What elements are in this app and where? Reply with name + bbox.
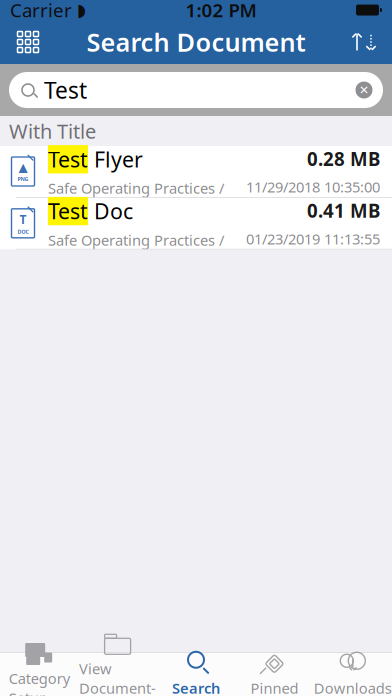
button[interactable]: Sort [342,20,386,64]
staticText: DOC [17,228,28,235]
staticText: 1:02 PM [185,0,256,22]
staticText: ✕ [359,83,369,97]
staticText: Category Setup [9,668,70,696]
staticText: 0.41 MB [307,198,380,223]
button[interactable]: Search [157,652,235,696]
button[interactable]: Downloads [314,652,392,696]
staticText: Doc [88,197,133,225]
staticText: Test [48,197,88,225]
staticText: PNG [17,175,28,182]
staticText: Test [48,145,88,173]
staticText: View Documents [79,659,156,696]
staticText: Flyer [88,145,143,173]
button[interactable]: Pinned [235,652,314,696]
staticText: Search [172,678,220,696]
staticText: 0.28 MB [307,146,380,171]
staticText: ▲ [18,161,27,174]
staticText: Test [44,75,87,105]
staticText: 11/29/2018 10:35:00 [246,177,380,197]
button[interactable]: ▲ [0,146,392,198]
staticText: 01/23/2019 11:13:55 [246,229,380,248]
staticText: T [19,211,26,227]
staticText: With Title [9,118,96,144]
button[interactable]: Grid view [6,20,50,64]
button[interactable]: Category Setup [0,652,78,696]
button[interactable]: T [0,198,392,250]
staticText: Pinned [250,678,298,696]
staticText: Safe Operating Practices / [48,178,224,198]
button[interactable]: Clear search [349,75,379,105]
button[interactable]: View Documents [78,652,157,696]
staticText: Downloads [314,678,392,696]
staticText: Carrier [10,0,72,22]
staticText: Search Document [86,25,305,59]
staticText: Safe Operating Practices / [48,230,224,250]
staticText: ◗ [77,0,86,20]
